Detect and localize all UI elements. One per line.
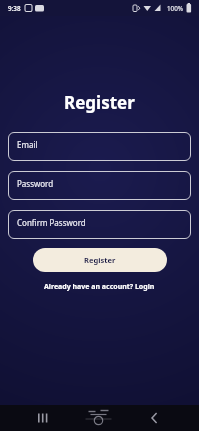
button[interactable]: Already have an account? Login bbox=[0, 282, 199, 292]
button[interactable]: Email bbox=[8, 132, 191, 161]
staticText: Register bbox=[84, 255, 116, 265]
staticText: Confirm Password bbox=[17, 217, 86, 228]
button[interactable] bbox=[67, 405, 133, 431]
button[interactable]: Password bbox=[8, 171, 191, 200]
staticText: Register bbox=[64, 91, 135, 114]
button[interactable] bbox=[133, 405, 199, 431]
staticText: Password bbox=[17, 178, 54, 189]
button[interactable]: Confirm Password bbox=[8, 210, 191, 239]
staticText: Already have an account? Login bbox=[44, 282, 155, 292]
button[interactable] bbox=[0, 405, 67, 431]
staticText: 9:38 bbox=[8, 4, 21, 13]
staticText: 100% bbox=[167, 4, 184, 13]
button[interactable]: Register bbox=[33, 248, 167, 272]
staticText: Email bbox=[17, 139, 38, 150]
